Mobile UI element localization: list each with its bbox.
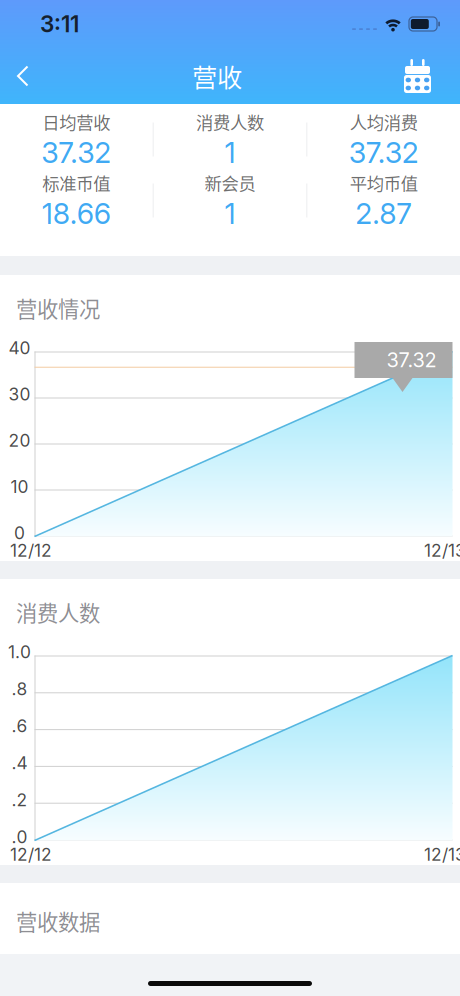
staticText: .6 <box>11 715 27 736</box>
staticText: 37.32 <box>41 135 111 170</box>
staticText: .0 <box>11 826 27 847</box>
staticText: 消费人数 <box>16 597 100 627</box>
staticText: 日均营收 <box>42 109 110 134</box>
staticText: 40 <box>8 337 30 358</box>
button[interactable]: Back <box>0 50 44 102</box>
staticText: 10 <box>10 476 28 497</box>
staticText: 12/12 <box>10 540 52 561</box>
staticText: 12/12 <box>10 844 52 865</box>
staticText: 营收数据 <box>16 906 100 936</box>
staticText: .8 <box>11 678 27 699</box>
staticText: 1 <box>224 135 235 170</box>
staticText: 新会员 <box>204 170 255 195</box>
staticText: 消费人数 <box>196 109 264 134</box>
staticText: 平均币值 <box>350 170 418 195</box>
staticText: 30 <box>8 384 30 405</box>
staticText: 37.32 <box>386 348 436 372</box>
staticText: 12/13 <box>424 844 460 865</box>
staticText: 人均消费 <box>350 109 418 134</box>
staticText: 3:11 <box>40 10 79 38</box>
staticText: 18.66 <box>42 196 111 231</box>
staticText: .4 <box>11 752 27 773</box>
button[interactable]: Calendar <box>390 50 460 102</box>
staticText: .2 <box>11 789 27 810</box>
staticText: 20 <box>8 430 30 451</box>
staticText: 营收 <box>192 58 242 94</box>
staticText: 标准币值 <box>42 170 110 195</box>
staticText: 1 <box>224 196 235 231</box>
staticText: 37.32 <box>349 135 419 170</box>
staticText: 1.0 <box>8 641 31 662</box>
staticText: 营收情况 <box>16 293 100 323</box>
staticText: 0 <box>14 522 25 543</box>
staticText: 12/13 <box>424 540 460 561</box>
staticText: 2.87 <box>355 196 412 231</box>
